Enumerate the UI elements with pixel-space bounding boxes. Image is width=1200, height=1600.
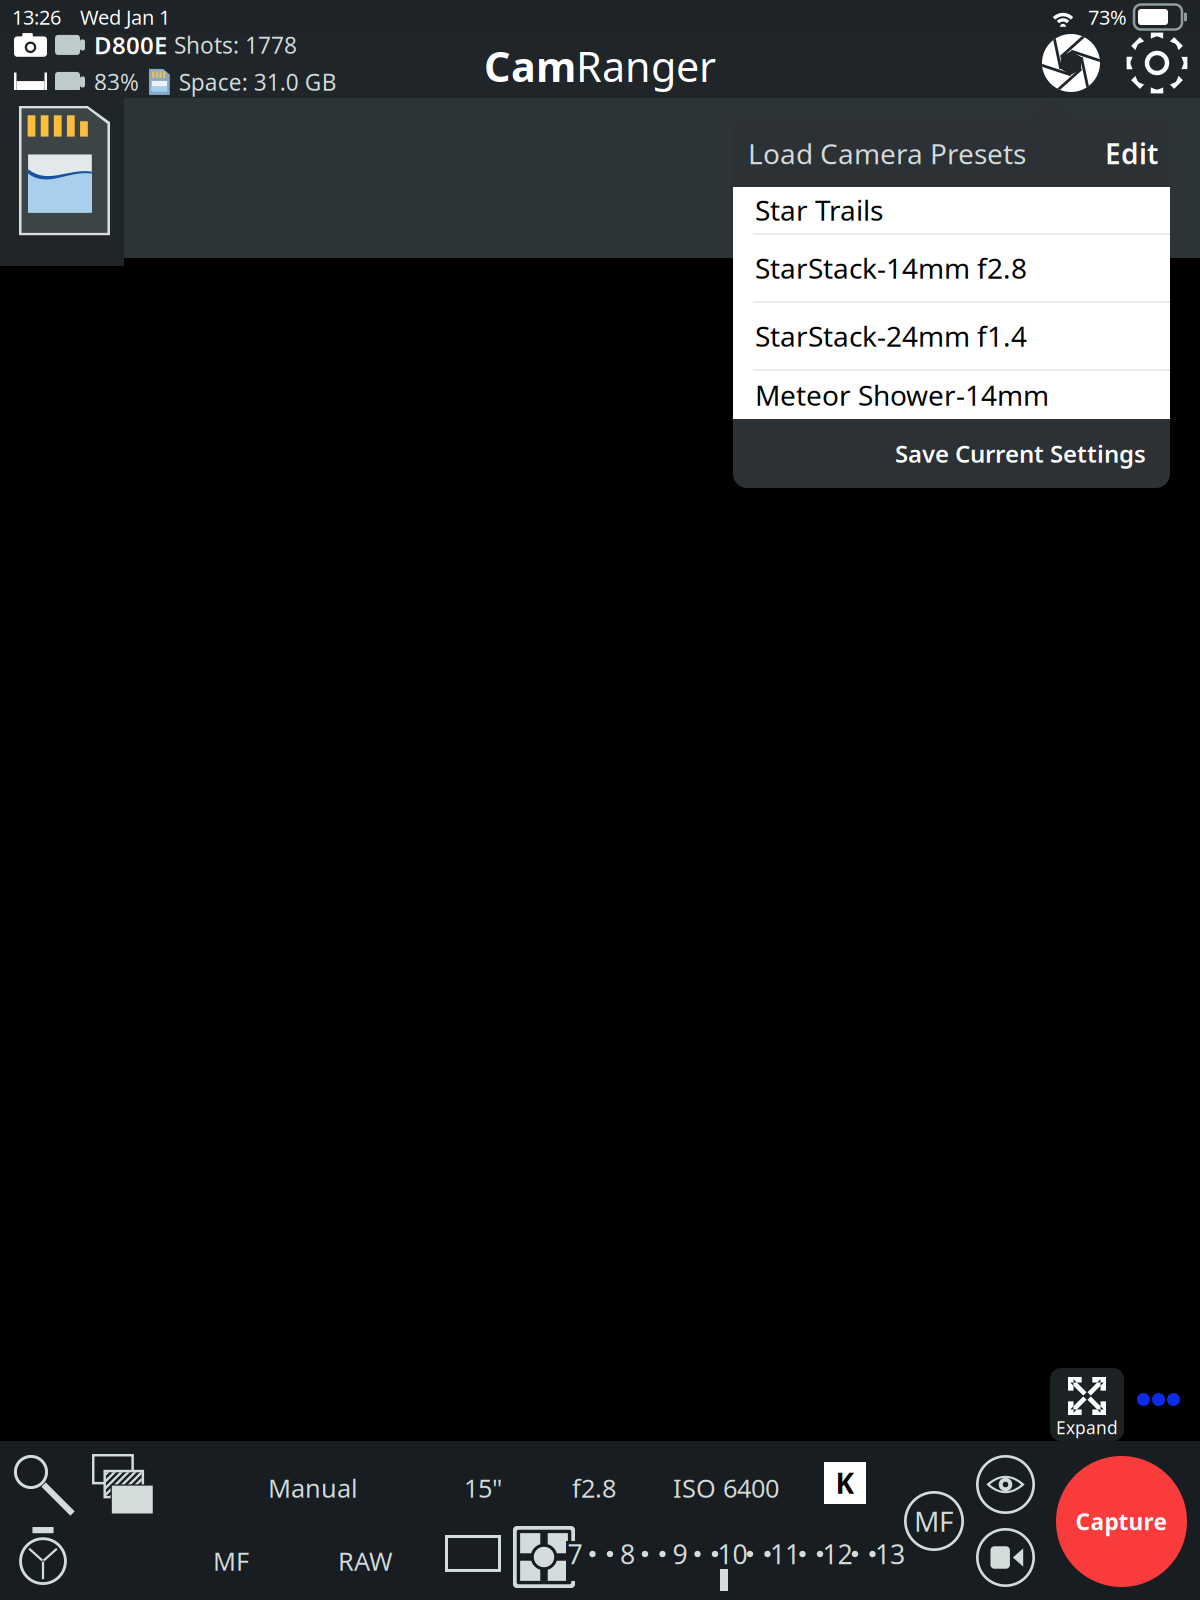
staticText: f2.8 [572,1471,616,1505]
staticText: StarStack-24mm f1.4 [755,317,1027,355]
staticText: MF [213,1544,249,1578]
staticText: Ranger [576,39,716,93]
staticText: Cam [484,39,576,93]
staticText: K [835,1464,854,1502]
button[interactable]: f2.8 [572,1471,616,1505]
button[interactable]: Camera presets [1042,34,1100,92]
staticText: 8 [620,1536,635,1572]
button[interactable]: Star Trails [733,186,1170,234]
button[interactable]: Image size [445,1535,501,1572]
button[interactable]: Video recording [976,1528,1035,1587]
staticText: 9 [672,1536,687,1572]
staticText: Meteor Shower-14mm [755,376,1049,414]
button[interactable]: Manual focus [904,1491,964,1551]
staticText: Edit [1105,135,1158,172]
staticText: 13:26 [12,4,61,30]
staticText: MF [914,1502,954,1540]
button[interactable]: Edit [1105,135,1158,172]
button[interactable]: StarStack-14mm f2.8 [733,234,1170,302]
staticText: Expand [1056,1416,1118,1439]
staticText: Load Camera Presets [748,135,1026,172]
button[interactable]: Meteor Shower-14mm [733,370,1170,419]
button[interactable]: Settings [1100,32,1188,94]
button[interactable]: MF [213,1544,249,1578]
staticText: 7 [567,1536,582,1572]
button[interactable]: Metering mode [513,1526,575,1588]
button[interactable]: Capture [1056,1456,1187,1587]
button[interactable]: Image gallery [92,1454,154,1516]
staticText: 10 [717,1536,747,1572]
staticText: 12 [822,1536,852,1572]
staticText: Manual [268,1471,358,1505]
button[interactable]: Memory card [0,90,124,266]
button[interactable]: Intervalometer [12,1523,74,1585]
button[interactable]: Manual [268,1471,358,1505]
button[interactable]: Save Current Settings [895,438,1146,469]
button[interactable]: StarStack-24mm f1.4 [733,302,1170,370]
button[interactable]: White balance [824,1462,866,1504]
button[interactable]: RAW [338,1544,393,1578]
staticText: 73% [1088,4,1127,30]
staticText: StarStack-14mm f2.8 [755,249,1027,287]
staticText: 13 [875,1536,905,1572]
button[interactable]: More options [1124,1368,1180,1406]
staticText: 11 [770,1536,800,1572]
staticText: RAW [338,1544,393,1578]
staticText: Shots: 1778 [174,30,297,60]
staticText: Star Trails [755,191,883,229]
staticText: Space: 31.0 GB [179,67,337,97]
button[interactable]: Live view [976,1455,1035,1514]
staticText: Save Current Settings [895,438,1146,469]
button[interactable]: 15" [464,1471,502,1505]
staticText: Capture [1075,1506,1167,1536]
staticText: Wed Jan 1 [80,4,170,30]
button[interactable]: Zoom [13,1454,75,1516]
staticText: ISO 6400 [673,1471,779,1505]
button[interactable]: Expand [1050,1368,1124,1441]
staticText: 15" [464,1471,502,1505]
staticText: D800E [94,29,167,61]
button[interactable]: ISO 6400 [673,1471,779,1505]
staticText: 83% [94,67,139,97]
